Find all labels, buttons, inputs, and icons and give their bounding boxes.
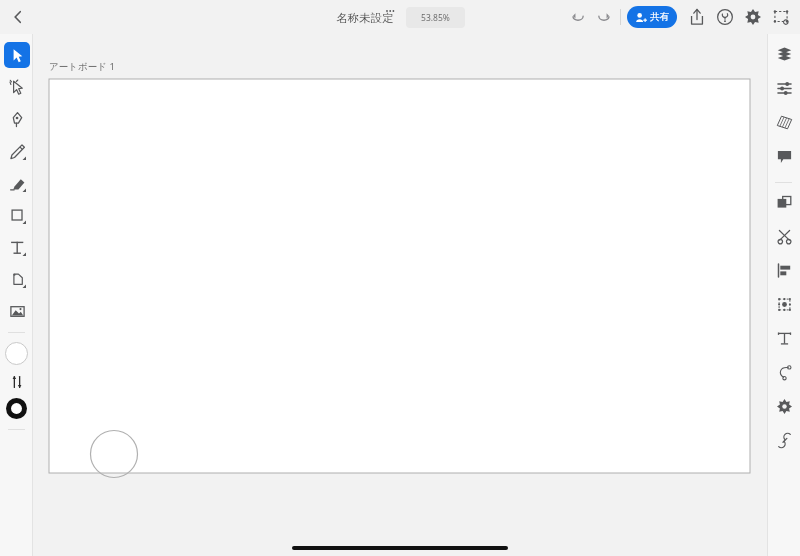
button[interactable]: Align: [771, 257, 797, 283]
button[interactable]: Pencil: [4, 138, 30, 164]
staticText: 名称未設定: [336, 11, 394, 25]
button[interactable]: Export: [684, 4, 710, 30]
button[interactable]: Eraser: [4, 170, 30, 196]
button[interactable]: Transform: [771, 291, 797, 317]
button[interactable]: Preview: [768, 4, 794, 30]
button[interactable]: Text style: [771, 325, 797, 351]
button[interactable]: Grid: [771, 109, 797, 135]
button[interactable]: 53.85%: [406, 7, 465, 28]
button[interactable]: Layers: [771, 41, 797, 67]
button[interactable]: Text: [4, 234, 30, 260]
button[interactable]: Image: [4, 298, 30, 324]
button[interactable]: Properties: [771, 75, 797, 101]
button[interactable]: Cut: [771, 223, 797, 249]
button[interactable]: Crop: [4, 266, 30, 292]
button[interactable]: Comments: [771, 143, 797, 169]
button[interactable]: Link: [771, 427, 797, 453]
button[interactable]: Stroke color: [5, 397, 28, 420]
button[interactable]: Fill color: [5, 342, 28, 365]
staticText: 共有: [650, 11, 669, 23]
button[interactable]: Swap colors: [7, 372, 27, 392]
button[interactable]: 共有: [627, 6, 677, 28]
button[interactable]: Effects: [771, 393, 797, 419]
button[interactable]: Select: [4, 42, 30, 68]
button[interactable]: Duplicate: [771, 189, 797, 215]
button[interactable]: [49, 79, 750, 473]
button[interactable]: Rectangle: [4, 202, 30, 228]
staticText: アートボード 1: [49, 60, 115, 73]
button[interactable]: Direct select: [4, 74, 30, 100]
button[interactable]: Path: [771, 359, 797, 385]
button[interactable]: Pen: [4, 106, 30, 132]
button[interactable]: Undo: [565, 4, 591, 30]
button[interactable]: Redo: [591, 4, 617, 30]
button[interactable]: Help: [712, 4, 738, 30]
button[interactable]: Back: [4, 3, 32, 31]
staticText: 53.85%: [421, 12, 450, 24]
button[interactable]: Settings: [740, 4, 766, 30]
